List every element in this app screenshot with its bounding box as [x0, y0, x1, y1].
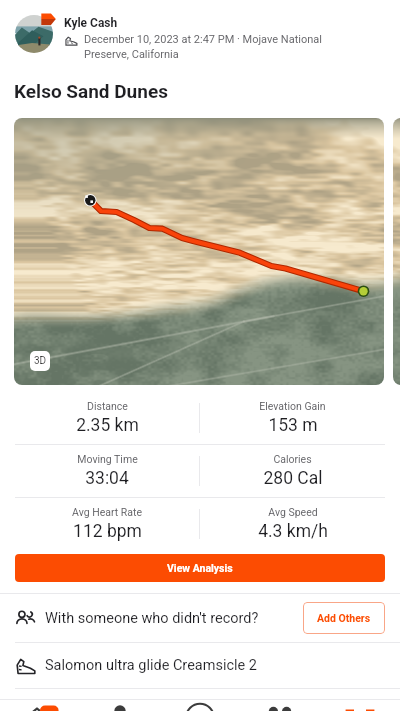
- button[interactable]: Add Others: [303, 602, 385, 634]
- button[interactable]: Home: [0, 700, 80, 711]
- button[interactable]: Toggle 3D map: [30, 351, 50, 371]
- staticText: Distance: [87, 400, 128, 412]
- staticText: 3D: [34, 355, 47, 367]
- button[interactable]: Groups: [80, 700, 160, 711]
- staticText: Kyle Cash: [64, 16, 118, 30]
- button[interactable]: Toggle 3D map: [14, 118, 384, 385]
- staticText: 280 Cal: [263, 468, 323, 489]
- staticText: 4.3 km/h: [258, 521, 328, 542]
- staticText: Moving Time: [77, 453, 138, 465]
- staticText: View Analysis: [167, 562, 233, 574]
- button[interactable]: You: [320, 700, 400, 711]
- staticText: Salomon ultra glide Creamsicle 2: [45, 657, 257, 674]
- staticText: Kelso Sand Dunes: [14, 80, 168, 102]
- staticText: Elevation Gain: [259, 400, 326, 412]
- staticText: 112 bpm: [73, 521, 142, 542]
- staticText: Avg Heart Rate: [72, 506, 142, 518]
- staticText: Avg Speed: [268, 506, 318, 518]
- staticText: With someone who didn't record?: [45, 610, 259, 627]
- staticText: Calories: [273, 453, 312, 465]
- button[interactable]: Record: [160, 700, 240, 711]
- staticText: December 10, 2023 at 2:47 PM · Mojave Na…: [84, 33, 324, 61]
- button[interactable]: Salomon ultra glide Creamsicle 2: [0, 643, 400, 688]
- staticText: 33:04: [85, 468, 129, 489]
- button[interactable]: Kyle Cash: [0, 0, 400, 61]
- staticText: 153 m: [268, 415, 318, 436]
- button[interactable]: With someone who didn't record?: [0, 594, 400, 642]
- button[interactable]: Maps: [240, 700, 320, 711]
- staticText: Add Others: [317, 612, 371, 624]
- button[interactable]: View Analysis: [15, 554, 385, 582]
- staticText: 2.35 km: [76, 415, 139, 436]
